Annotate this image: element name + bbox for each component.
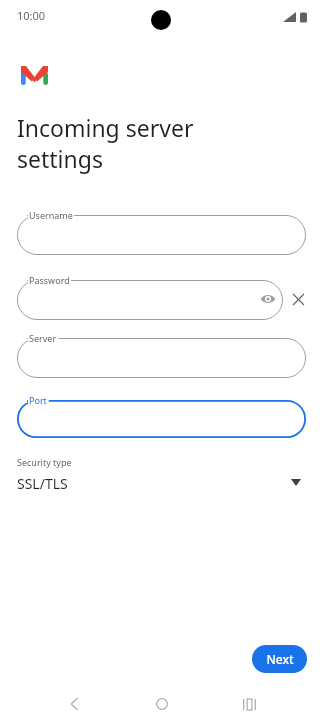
button[interactable]: Back bbox=[62, 691, 88, 717]
button[interactable]: Next bbox=[252, 645, 307, 673]
button[interactable] bbox=[17, 338, 306, 378]
button[interactable]: Clear password bbox=[287, 288, 309, 310]
button[interactable]: Recent apps bbox=[236, 691, 262, 717]
button[interactable]: Show password bbox=[254, 285, 282, 313]
staticText: Username bbox=[29, 209, 73, 221]
button[interactable] bbox=[17, 280, 283, 320]
button[interactable] bbox=[17, 215, 306, 255]
button[interactable]: Security type bbox=[0, 452, 324, 500]
staticText: Security type bbox=[17, 456, 72, 468]
button[interactable]: Home bbox=[149, 691, 175, 717]
staticText: settings bbox=[17, 143, 103, 174]
staticText: Server bbox=[29, 332, 57, 344]
staticText: 10:00 bbox=[17, 8, 46, 23]
staticText: Incoming server bbox=[17, 112, 194, 143]
staticText: SSL/TLS bbox=[17, 474, 68, 493]
button[interactable] bbox=[17, 400, 306, 438]
staticText: Next bbox=[266, 651, 294, 667]
staticText: Password bbox=[29, 274, 70, 286]
staticText: Port bbox=[29, 394, 47, 406]
